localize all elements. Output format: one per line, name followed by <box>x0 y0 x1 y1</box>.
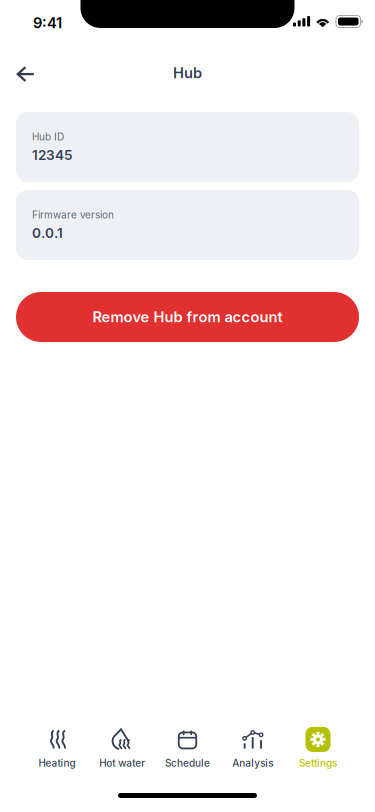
staticText: 12345 <box>32 147 73 163</box>
staticText: Hub ID <box>32 131 64 143</box>
button[interactable]: Analysis <box>220 726 286 770</box>
staticText: Schedule <box>165 757 210 769</box>
staticText: Remove Hub from account <box>92 308 282 326</box>
staticText: Hot water <box>99 757 145 769</box>
button[interactable]: Settings <box>285 726 351 770</box>
staticText: Heating <box>38 757 75 769</box>
button[interactable]: Back <box>3 52 47 96</box>
button[interactable]: Remove Hub from account <box>16 292 359 342</box>
button[interactable]: Hot water <box>89 726 155 770</box>
staticText: Hub <box>173 64 202 82</box>
button[interactable]: Heating <box>24 726 90 770</box>
staticText: Settings <box>299 757 337 769</box>
staticText: 9:41 <box>33 14 62 32</box>
button[interactable]: Schedule <box>154 726 220 770</box>
staticText: Analysis <box>232 757 273 769</box>
staticText: 0.0.1 <box>32 225 63 241</box>
staticText: Firmware version <box>32 209 114 221</box>
